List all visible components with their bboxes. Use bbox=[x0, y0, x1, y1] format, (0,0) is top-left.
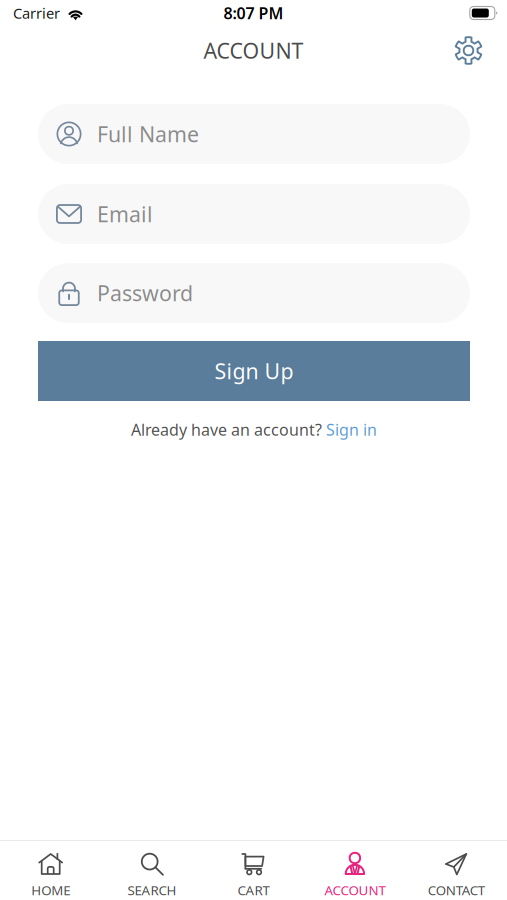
button[interactable]: Sign Up bbox=[38, 341, 470, 401]
staticText: Email bbox=[97, 200, 153, 228]
button[interactable]: HOME bbox=[0, 841, 101, 900]
staticText: SEARCH bbox=[128, 881, 177, 899]
staticText: Already have an account? bbox=[131, 419, 322, 440]
staticText: Sign Up bbox=[214, 357, 293, 385]
staticText: 8:07 PM bbox=[223, 2, 283, 24]
staticText: Carrier bbox=[13, 3, 60, 23]
staticText: HOME bbox=[31, 881, 70, 899]
button[interactable]: CONTACT bbox=[406, 841, 507, 900]
staticText: Password bbox=[97, 279, 193, 307]
staticText: Full Name bbox=[97, 120, 199, 148]
staticText: CART bbox=[237, 881, 269, 899]
button[interactable]: ACCOUNT bbox=[304, 841, 406, 900]
button[interactable]: CART bbox=[203, 841, 304, 900]
button[interactable]: Already have an account? bbox=[131, 413, 377, 446]
button[interactable]: SEARCH bbox=[101, 841, 203, 900]
staticText: CONTACT bbox=[428, 881, 485, 899]
staticText: Sign in bbox=[326, 419, 377, 440]
button[interactable]: Settings bbox=[442, 28, 495, 73]
staticText: ACCOUNT bbox=[324, 881, 385, 899]
staticText: ACCOUNT bbox=[203, 36, 303, 65]
